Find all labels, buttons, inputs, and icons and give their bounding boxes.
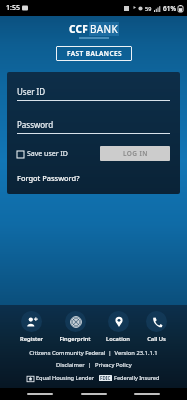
staticText: Federally Insured xyxy=(114,374,160,382)
button[interactable]: Disclaimer xyxy=(56,361,85,369)
staticText: BANK xyxy=(90,22,118,36)
staticText: Citizens Community Federal | Version 23.… xyxy=(0,349,187,357)
button[interactable]: Navigation xyxy=(27,393,53,395)
button[interactable]: Navigation xyxy=(81,393,107,395)
button[interactable]: Register xyxy=(18,311,45,343)
staticText: Call Us xyxy=(147,335,166,343)
button[interactable]: LOG IN xyxy=(100,146,170,161)
button[interactable]: Password xyxy=(17,119,170,134)
staticText: Fingerprint xyxy=(59,335,91,343)
button[interactable]: Fingerprint xyxy=(57,311,93,343)
staticText: | xyxy=(85,361,95,369)
other: Call Us xyxy=(151,316,163,328)
staticText: Disclaimer xyxy=(56,361,85,369)
staticText: 59 xyxy=(145,5,152,12)
other: Register xyxy=(26,316,38,328)
button[interactable]: Privacy Policy xyxy=(95,361,132,369)
staticText: Privacy Policy xyxy=(95,361,132,369)
staticText: Register xyxy=(20,335,43,343)
staticText: Forgot Password? xyxy=(17,173,80,183)
other: Fingerprint xyxy=(70,316,82,328)
button[interactable]: Location xyxy=(104,311,132,343)
staticText: User ID xyxy=(17,86,46,97)
staticText: 1:55 xyxy=(6,3,20,13)
staticText: LOG IN xyxy=(123,149,148,158)
other: Location xyxy=(113,316,125,328)
staticText: CCF xyxy=(69,22,89,36)
button[interactable]: Call Us xyxy=(144,311,169,343)
button[interactable]: User ID xyxy=(17,86,170,101)
staticText: Equal Housing Lender xyxy=(36,374,94,382)
staticText: 61% xyxy=(163,4,176,13)
staticText: Save user ID xyxy=(27,149,68,159)
button[interactable]: FAST BALANCES xyxy=(56,46,132,61)
staticText: FDIC xyxy=(100,375,111,381)
button[interactable]: Save user ID xyxy=(17,149,68,159)
staticText: Password xyxy=(17,119,54,130)
button[interactable]: Forgot Password? xyxy=(17,173,80,183)
staticText: Location xyxy=(106,335,130,343)
staticText: FAST BALANCES xyxy=(67,49,122,58)
button[interactable]: Navigation xyxy=(134,393,160,395)
